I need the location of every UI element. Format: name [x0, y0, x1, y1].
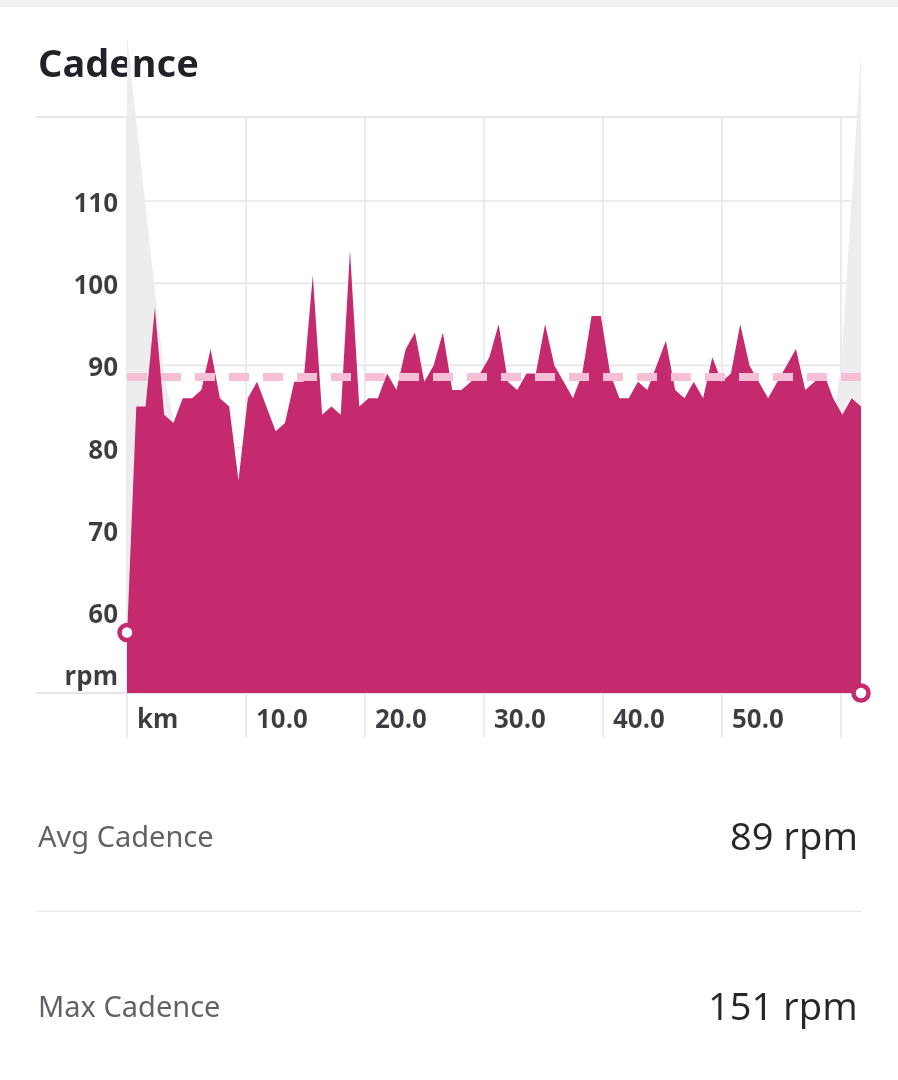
staticText: 80 — [0, 431, 118, 466]
staticText: 60 — [0, 595, 118, 630]
staticText: 10.0 — [256, 700, 308, 735]
staticText: rpm — [0, 657, 118, 692]
staticText: Max Cadence — [38, 986, 221, 1025]
staticText: Cadence — [38, 36, 199, 88]
staticText: 70 — [0, 513, 118, 548]
staticText: 40.0 — [613, 700, 665, 735]
staticText: 110 — [0, 184, 118, 219]
staticText: 20.0 — [375, 700, 427, 735]
staticText: km — [137, 700, 179, 735]
staticText: 89 rpm — [730, 809, 858, 861]
button[interactable]: Max Cadence — [0, 930, 898, 1080]
staticText: 30.0 — [494, 700, 546, 735]
staticText: 100 — [0, 266, 118, 301]
button[interactable]: Avg Cadence — [0, 760, 898, 910]
staticText: 50.0 — [732, 700, 784, 735]
staticText: Avg Cadence — [38, 816, 214, 855]
staticText: 90 — [0, 348, 118, 383]
staticText: 151 rpm — [708, 979, 858, 1031]
